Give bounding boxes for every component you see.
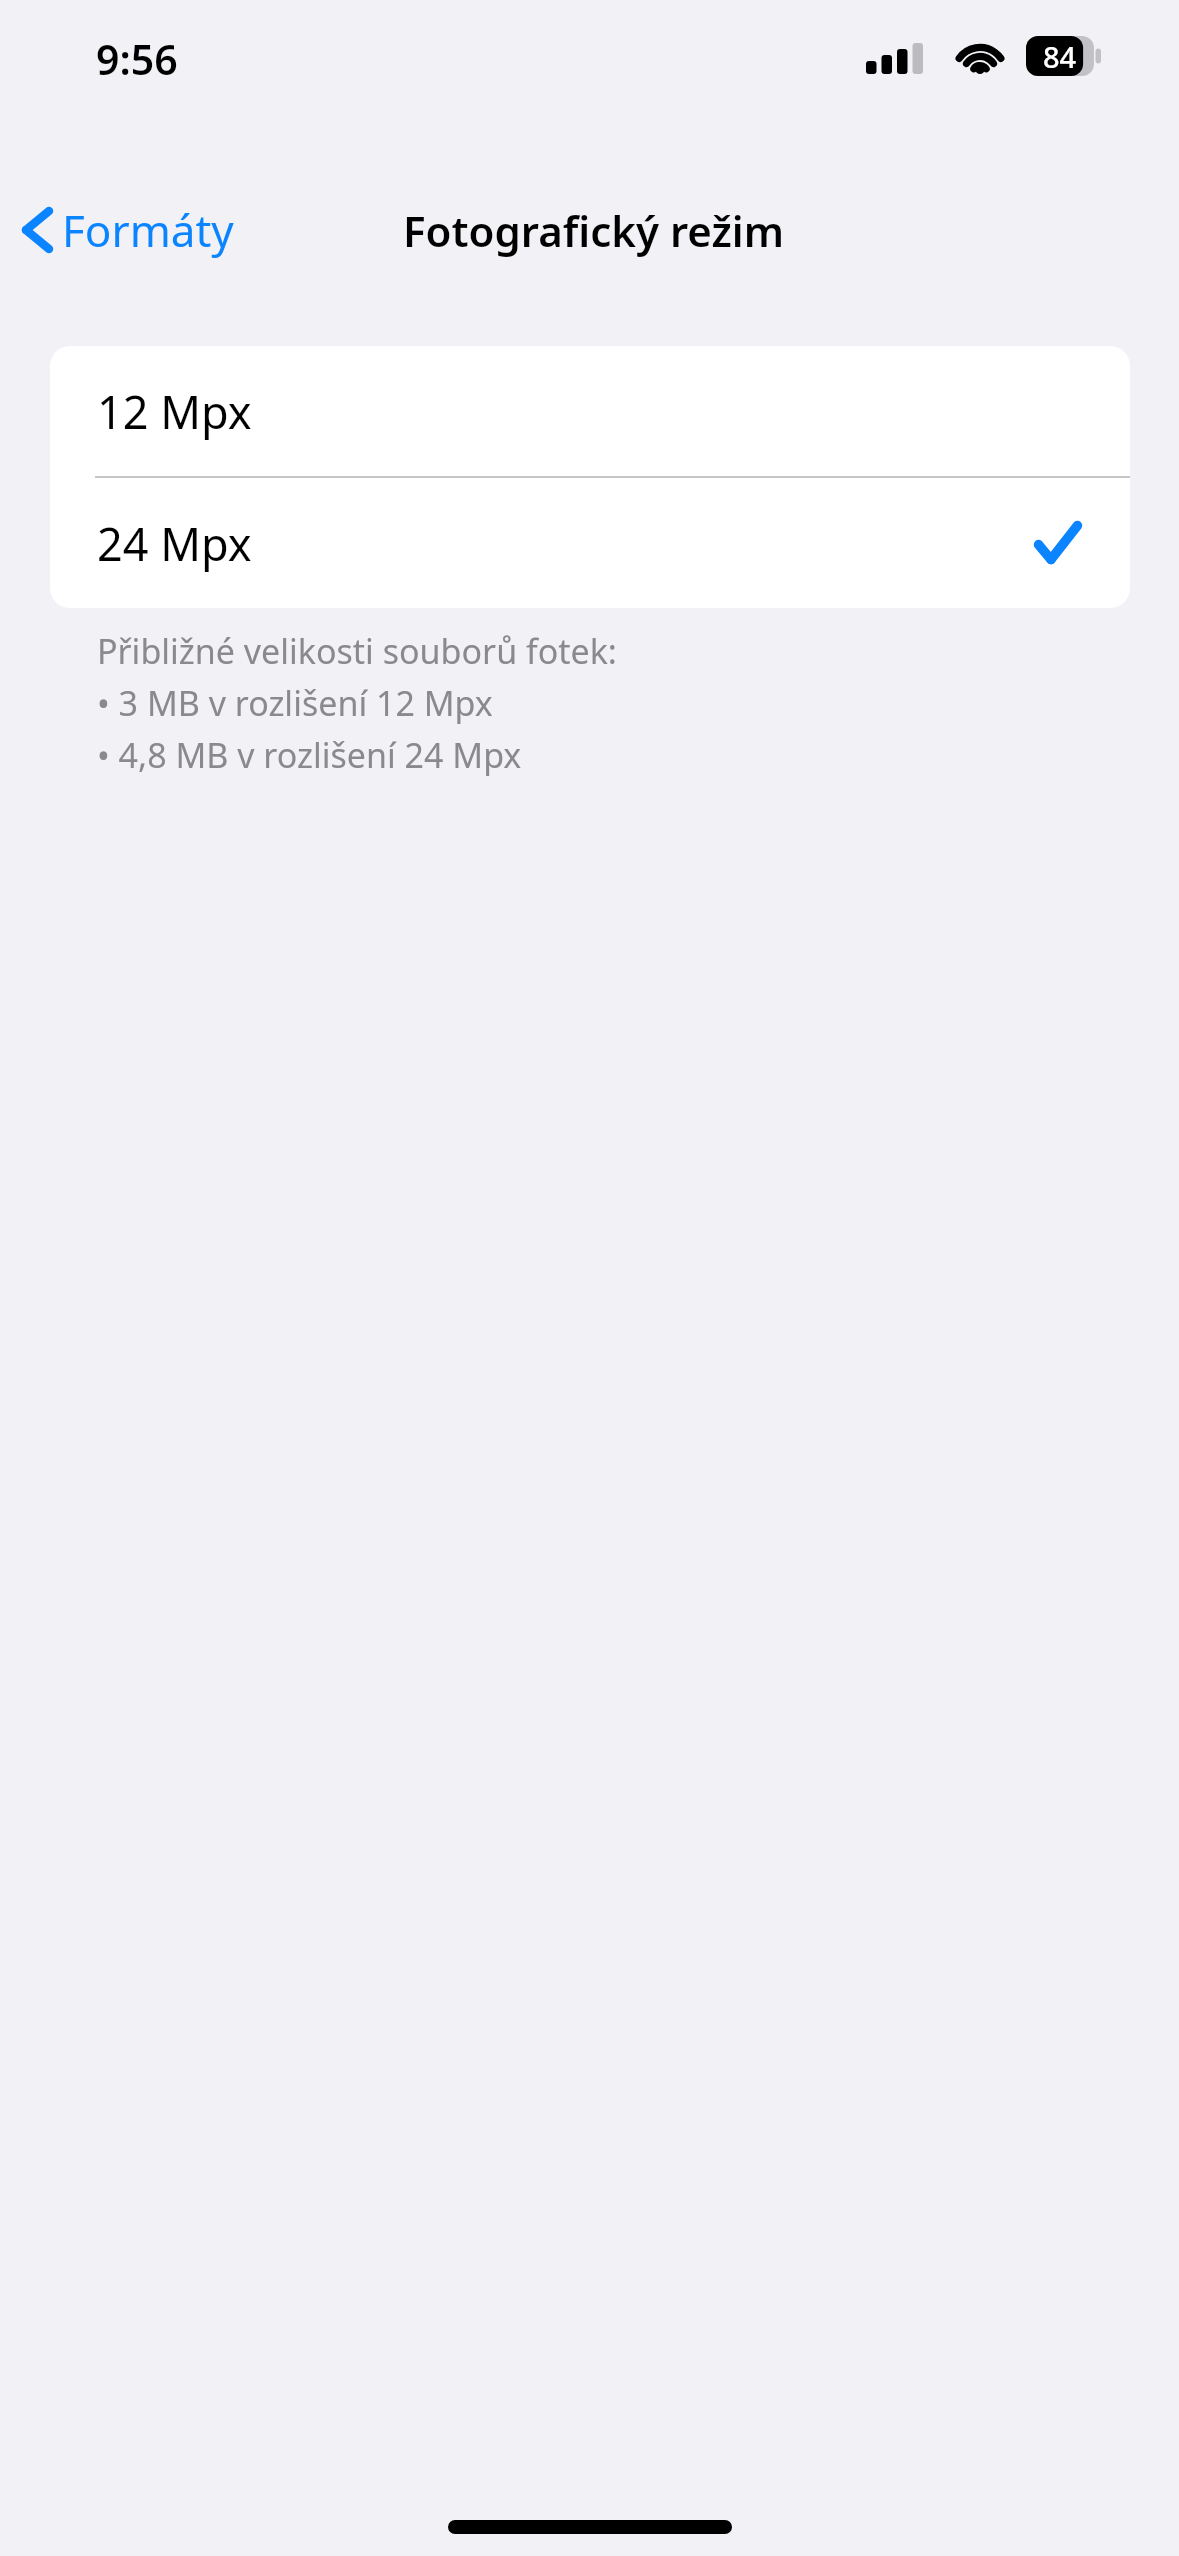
staticText: Přibližné velikosti souborů fotek:	[97, 628, 617, 674]
other: Vybráno	[1036, 523, 1080, 563]
staticText: • 3 MB v rozlišení 12 Mpx	[97, 680, 493, 726]
staticText: 24 Mpx	[97, 513, 252, 574]
staticText: 9:56	[96, 31, 178, 81]
staticText: • 4,8 MB v rozlišení 24 Mpx	[97, 732, 522, 778]
button[interactable]: Formáty	[14, 188, 248, 272]
staticText: Formáty	[62, 200, 234, 260]
staticText: 12 Mpx	[97, 381, 252, 442]
button[interactable]: 12 Mpx	[50, 346, 1130, 476]
staticText: Fotografický režim	[403, 202, 784, 259]
button[interactable]: 24 Mpx	[50, 478, 1130, 608]
staticText: 84	[1043, 37, 1077, 76]
